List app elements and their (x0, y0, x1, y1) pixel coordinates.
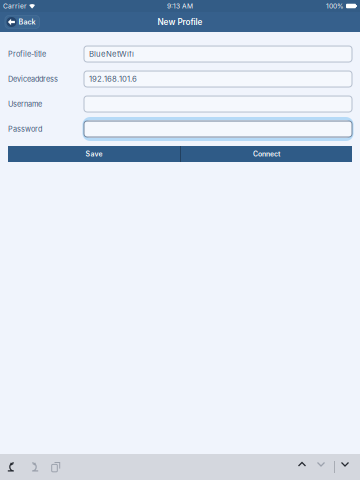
staticText: Connect (253, 150, 280, 158)
staticText: Back (18, 18, 35, 26)
staticText: 100% (326, 2, 344, 10)
button[interactable]: BlueNetWifi (84, 46, 352, 62)
staticText: New Profile (157, 17, 202, 27)
button[interactable]: Connect (181, 146, 352, 162)
button[interactable]: 192.168.101.6 (84, 71, 352, 87)
staticText: Password (8, 125, 42, 133)
staticText: Username (8, 100, 42, 108)
button[interactable]: Next field (317, 461, 328, 472)
button[interactable] (84, 121, 352, 137)
staticText: Save (85, 150, 102, 158)
button[interactable]: Redo (28, 461, 40, 473)
staticText: 192.168.101.6 (89, 74, 137, 84)
button[interactable]: Back (5, 15, 39, 28)
button[interactable]: Undo (6, 461, 18, 473)
staticText: Deviceaddress (8, 75, 58, 83)
staticText: Profile-title (8, 50, 46, 58)
button[interactable]: Dismiss keyboard (341, 461, 352, 472)
staticText: BlueNetWifi (89, 49, 134, 59)
button[interactable]: Previous field (298, 461, 309, 472)
staticText: 9:13 AM (167, 2, 193, 10)
staticText: Carrier (3, 2, 27, 10)
button[interactable]: Copy (50, 461, 62, 473)
button[interactable]: Save (8, 146, 180, 162)
button[interactable] (84, 96, 352, 112)
